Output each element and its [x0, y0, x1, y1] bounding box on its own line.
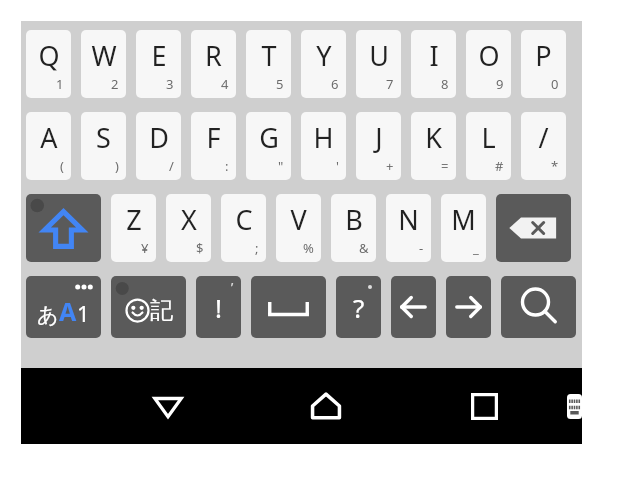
- button[interactable]: T: [246, 30, 291, 98]
- staticText: 4: [221, 75, 229, 93]
- button[interactable]: W: [81, 30, 126, 98]
- staticText: X: [181, 201, 197, 238]
- staticText: P: [535, 37, 552, 74]
- staticText: A: [40, 119, 58, 156]
- staticText: Y: [316, 37, 332, 74]
- staticText: :: [225, 157, 229, 175]
- staticText: ': [336, 157, 339, 175]
- staticText: Q: [38, 37, 60, 74]
- staticText: $: [196, 239, 204, 257]
- staticText: H: [313, 119, 334, 156]
- staticText: 1: [56, 75, 64, 93]
- staticText: /: [169, 157, 174, 175]
- button[interactable]: Space: [251, 276, 326, 338]
- staticText: %: [303, 239, 314, 257]
- staticText: ¥: [141, 239, 149, 257]
- staticText: ): [115, 157, 119, 175]
- button[interactable]: Z: [111, 194, 156, 262]
- button[interactable]: G: [246, 112, 291, 180]
- staticText: +: [386, 157, 394, 175]
- button[interactable]: ?: [336, 276, 381, 338]
- staticText: あ: [37, 302, 59, 328]
- staticText: Z: [126, 201, 142, 238]
- staticText: !: [215, 290, 222, 325]
- staticText: V: [290, 201, 307, 238]
- staticText: &: [359, 239, 369, 257]
- staticText: E: [151, 37, 167, 74]
- staticText: (: [60, 157, 64, 175]
- staticText: 記: [150, 296, 173, 325]
- button[interactable]: X: [166, 194, 211, 262]
- staticText: 9: [496, 75, 504, 93]
- button[interactable]: F: [191, 112, 236, 180]
- staticText: S: [96, 119, 111, 156]
- staticText: 3: [166, 75, 174, 93]
- staticText: 1: [77, 298, 90, 328]
- button[interactable]: U: [356, 30, 401, 98]
- staticText: /: [538, 119, 549, 156]
- button[interactable]: H: [301, 112, 346, 180]
- staticText: ": [278, 157, 284, 175]
- staticText: K: [425, 119, 442, 156]
- button[interactable]: L: [466, 112, 511, 180]
- staticText: M: [451, 201, 476, 238]
- staticText: D: [149, 119, 169, 156]
- button[interactable]: Hide keyboard: [125, 368, 211, 444]
- button[interactable]: /: [521, 112, 566, 180]
- staticText: ;: [255, 239, 259, 257]
- button[interactable]: Change keyboard: [567, 368, 582, 444]
- button[interactable]: Home: [283, 368, 369, 444]
- staticText: ?: [353, 290, 365, 325]
- button[interactable]: K: [411, 112, 456, 180]
- staticText: G: [259, 119, 279, 156]
- staticText: O: [478, 37, 500, 74]
- button[interactable]: J: [356, 112, 401, 180]
- staticText: L: [481, 119, 496, 156]
- button[interactable]: Search: [501, 276, 576, 338]
- button[interactable]: Emoji and symbols: [111, 276, 186, 338]
- staticText: J: [375, 119, 383, 156]
- button[interactable]: !: [196, 276, 241, 338]
- button[interactable]: I: [411, 30, 456, 98]
- button[interactable]: S: [81, 112, 126, 180]
- button[interactable]: Q: [26, 30, 71, 98]
- staticText: ’: [231, 278, 234, 296]
- staticText: =: [441, 157, 449, 175]
- staticText: 8: [441, 75, 449, 93]
- staticText: U: [369, 37, 389, 74]
- staticText: R: [205, 37, 222, 74]
- staticText: N: [398, 201, 419, 238]
- staticText: _: [473, 239, 479, 257]
- staticText: 0: [551, 75, 559, 93]
- staticText: #: [495, 157, 504, 175]
- button[interactable]: Y: [301, 30, 346, 98]
- staticText: -: [419, 239, 424, 257]
- staticText: *: [551, 157, 559, 175]
- button[interactable]: R: [191, 30, 236, 98]
- button[interactable]: P: [521, 30, 566, 98]
- button[interactable]: O: [466, 30, 511, 98]
- staticText: 5: [276, 75, 284, 93]
- button[interactable]: D: [136, 112, 181, 180]
- button[interactable]: Switch input mode: [26, 276, 101, 338]
- staticText: B: [345, 201, 363, 238]
- button[interactable]: C: [221, 194, 266, 262]
- button[interactable]: A: [26, 112, 71, 180]
- staticText: 2: [111, 75, 119, 93]
- button[interactable]: N: [386, 194, 431, 262]
- staticText: I: [429, 37, 439, 74]
- button[interactable]: E: [136, 30, 181, 98]
- staticText: A: [59, 294, 77, 328]
- button[interactable]: V: [276, 194, 321, 262]
- button[interactable]: Backspace: [496, 194, 571, 262]
- button[interactable]: Shift: [26, 194, 101, 262]
- button[interactable]: B: [331, 194, 376, 262]
- button[interactable]: Recent apps: [441, 368, 527, 444]
- button[interactable]: M: [441, 194, 486, 262]
- button[interactable]: Move cursor left: [391, 276, 436, 338]
- staticText: F: [206, 119, 221, 156]
- button[interactable]: Move cursor right: [446, 276, 491, 338]
- staticText: W: [91, 37, 117, 74]
- staticText: 6: [331, 75, 339, 93]
- staticText: 7: [386, 75, 394, 93]
